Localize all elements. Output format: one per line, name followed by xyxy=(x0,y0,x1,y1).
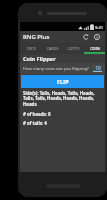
button[interactable]: Refresh xyxy=(81,32,91,42)
staticText: CARDS xyxy=(46,46,59,51)
staticText: COIN xyxy=(90,46,100,51)
button[interactable]: Info xyxy=(92,32,102,42)
staticText: Coin Flipper xyxy=(23,55,56,62)
button[interactable]: COIN xyxy=(84,43,105,54)
button[interactable]: 10 xyxy=(93,65,102,72)
staticText: Side(s): Tails, Heads, Tails, Heads, Tai… xyxy=(23,90,102,108)
staticText: # of heads: 6 xyxy=(23,111,51,117)
button[interactable]: CARDS xyxy=(42,43,63,54)
staticText: 10 xyxy=(95,65,101,71)
button[interactable]: LOTTO xyxy=(63,43,84,54)
staticText: DICE xyxy=(27,46,36,51)
button[interactable]: DICE xyxy=(20,43,42,54)
staticText: # of tails: 4 xyxy=(23,120,47,126)
staticText: How many coins are you flipping? xyxy=(23,66,89,72)
staticText: RNG Plus xyxy=(23,33,50,41)
staticText: 9:41 xyxy=(95,25,103,30)
button[interactable]: FLIP xyxy=(21,75,104,88)
staticText: FLIP xyxy=(57,78,69,85)
staticText: LOTTO xyxy=(67,46,80,51)
